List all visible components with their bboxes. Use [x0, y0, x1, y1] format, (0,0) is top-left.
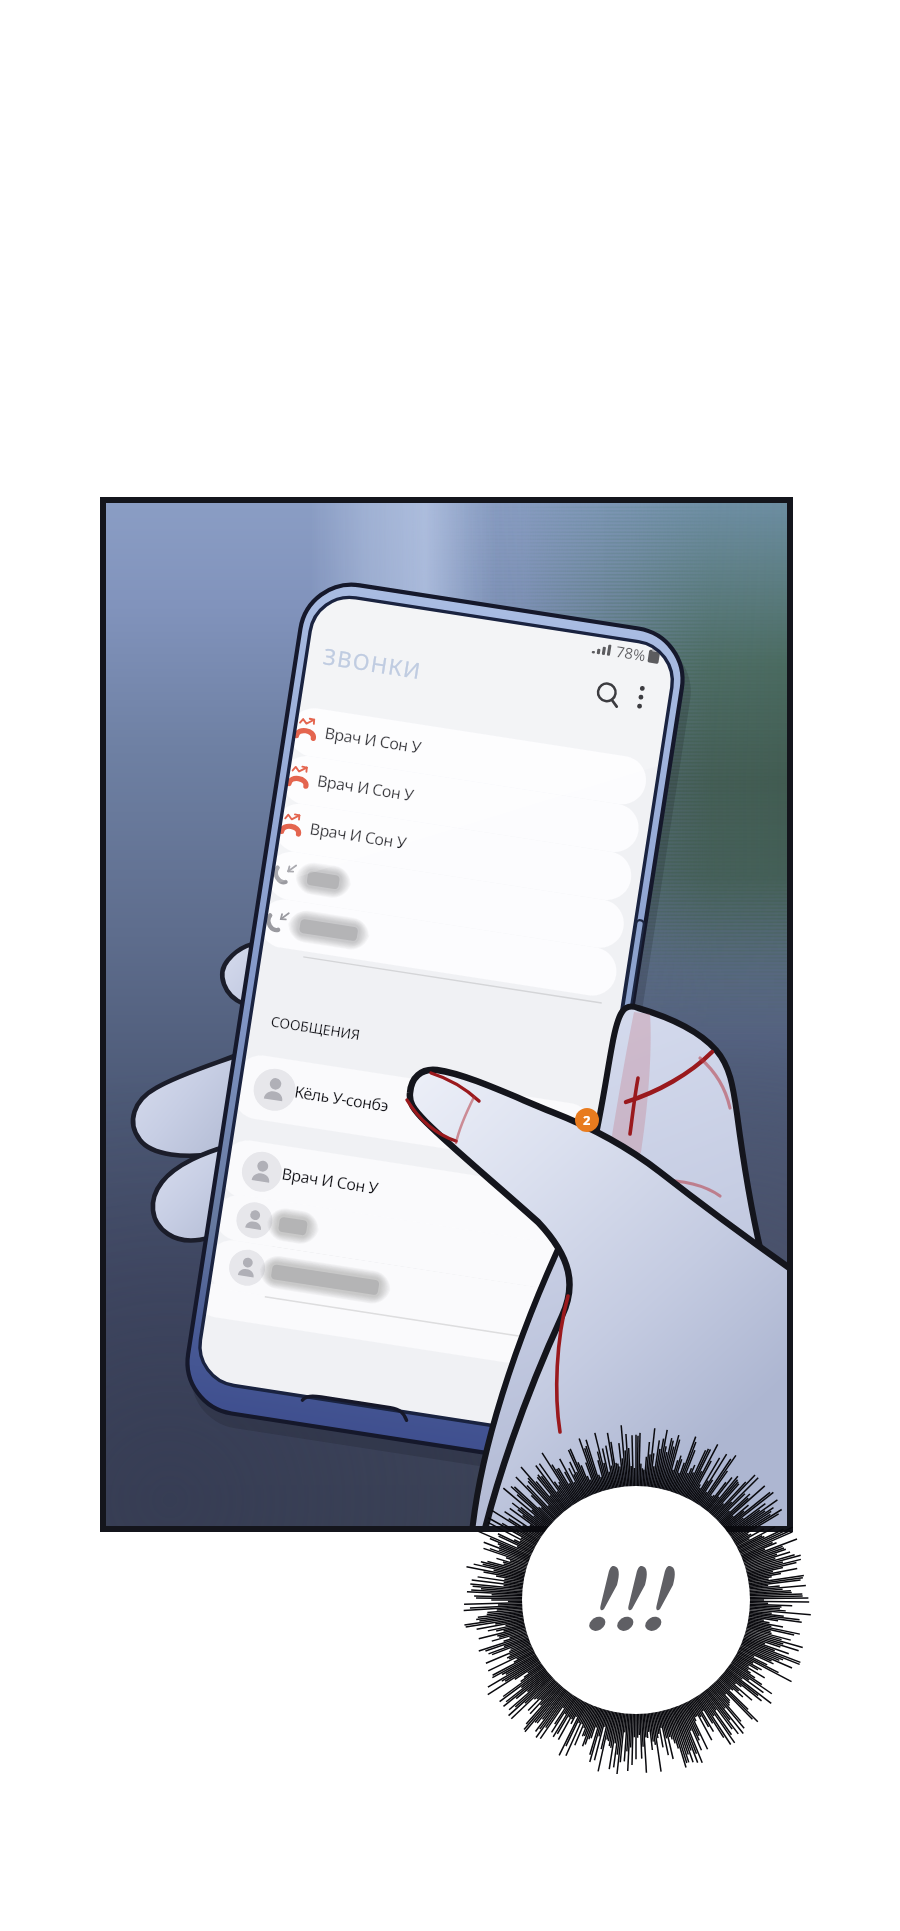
button[interactable]: Missed call from Врач И Сон У — [279, 771, 639, 821]
button[interactable]: Incoming call — [267, 873, 627, 923]
button[interactable]: Message from Кёль У-сонбэ — [252, 1056, 624, 1120]
button[interactable]: Message from Врач И Сон У — [238, 1142, 610, 1198]
button[interactable]: Incoming call — [261, 924, 621, 974]
button[interactable]: Exclamation — [522, 1486, 750, 1714]
button[interactable]: Message conversation — [226, 1244, 598, 1294]
button[interactable]: Missed call from Врач И Сон У — [273, 822, 633, 872]
button[interactable]: More options — [616, 674, 664, 732]
button[interactable]: Search calls — [578, 672, 640, 730]
button[interactable]: Missed call from Врач И Сон У — [285, 720, 645, 770]
button[interactable]: Message conversation — [232, 1196, 604, 1244]
